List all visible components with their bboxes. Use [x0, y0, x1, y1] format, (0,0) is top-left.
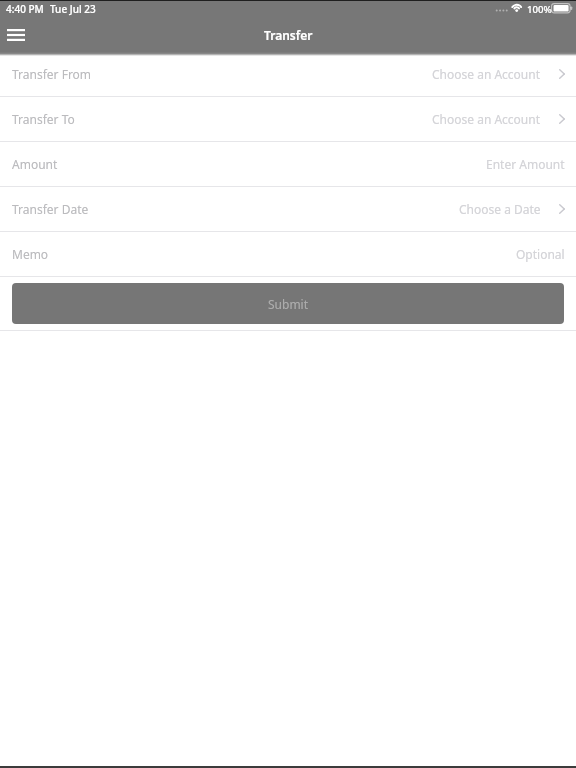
- staticText: Choose an Account: [432, 66, 541, 82]
- staticText: Submit: [268, 296, 309, 312]
- button[interactable]: Transfer Date: [0, 187, 576, 232]
- staticText: Choose a Date: [459, 201, 541, 217]
- staticText: Enter Amount: [486, 156, 565, 172]
- button[interactable]: Transfer To: [0, 97, 576, 142]
- staticText: Memo: [12, 246, 49, 262]
- staticText: Transfer From: [12, 66, 92, 82]
- staticText: 4:40 PM: [6, 2, 44, 16]
- button[interactable]: Open navigation menu: [0, 18, 31, 52]
- button[interactable]: Submit: [12, 283, 564, 324]
- staticText: Amount: [12, 156, 58, 172]
- staticText: Choose an Account: [432, 111, 541, 127]
- button[interactable]: Amount: [0, 142, 576, 187]
- staticText: Tue Jul 23: [50, 2, 96, 16]
- staticText: Transfer: [264, 27, 313, 43]
- button[interactable]: Transfer From: [0, 52, 576, 97]
- button[interactable]: Memo: [0, 232, 576, 277]
- staticText: Transfer Date: [12, 201, 89, 217]
- staticText: 100%: [527, 3, 552, 16]
- staticText: Transfer To: [12, 111, 75, 127]
- staticText: Optional: [516, 246, 565, 262]
